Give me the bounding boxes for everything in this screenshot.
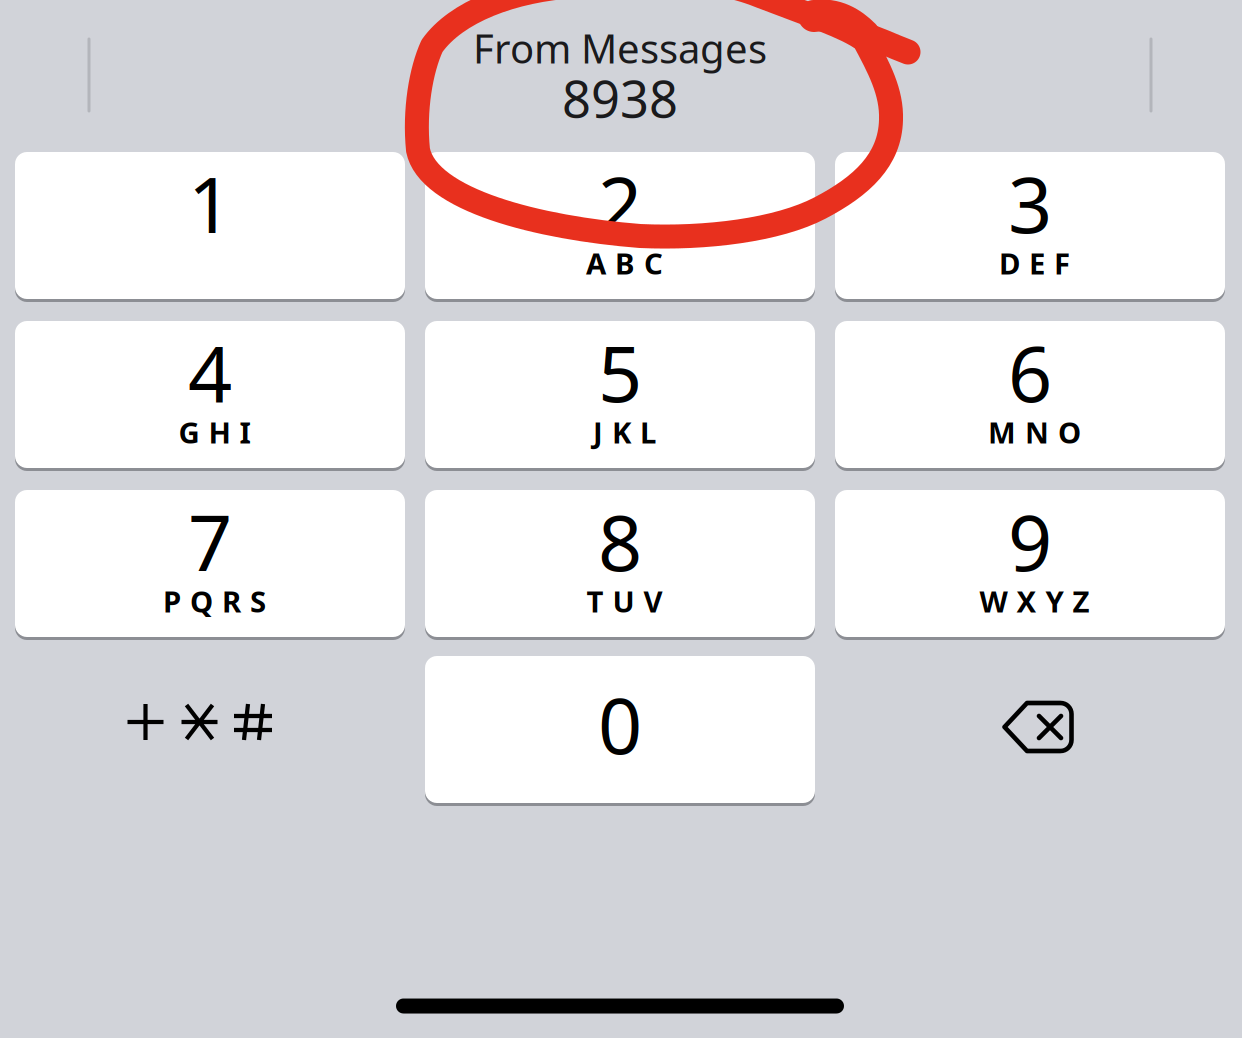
staticText: 3 <box>1008 152 1052 254</box>
staticText: WXYZ <box>979 581 1089 620</box>
button[interactable]: 5 <box>425 321 815 468</box>
staticText: MNO <box>988 412 1081 451</box>
button[interactable]: 8 <box>425 490 815 637</box>
staticText: TUV <box>586 581 662 620</box>
staticText: 4 <box>188 321 232 423</box>
staticText: 9 <box>1008 490 1052 592</box>
staticText: 0 <box>598 673 642 775</box>
button[interactable]: From Messages <box>120 0 1120 150</box>
staticText: GHI <box>178 412 250 451</box>
button[interactable]: 4 <box>15 321 405 468</box>
staticText: 1 <box>188 152 232 254</box>
button[interactable]: 0 <box>425 656 815 803</box>
staticText: JKL <box>593 412 656 451</box>
button[interactable]: Plus, star and pound symbols <box>15 656 405 803</box>
button[interactable]: 7 <box>15 490 405 637</box>
button[interactable]: Delete <box>835 656 1225 803</box>
staticText: 8938 <box>562 64 678 132</box>
button[interactable]: 6 <box>835 321 1225 468</box>
staticText: 7 <box>188 490 232 592</box>
staticText: 2 <box>598 152 642 254</box>
button[interactable]: 9 <box>835 490 1225 637</box>
staticText: 6 <box>1008 321 1052 423</box>
staticText: DEF <box>999 243 1070 282</box>
staticText: ABC <box>586 243 663 282</box>
staticText: 5 <box>598 321 642 423</box>
button[interactable]: 1 <box>15 152 405 299</box>
staticText: 8 <box>598 490 642 592</box>
button[interactable]: 3 <box>835 152 1225 299</box>
staticText: PQRS <box>163 581 266 620</box>
staticText: From Messages <box>473 21 767 74</box>
button[interactable]: 2 <box>425 152 815 299</box>
